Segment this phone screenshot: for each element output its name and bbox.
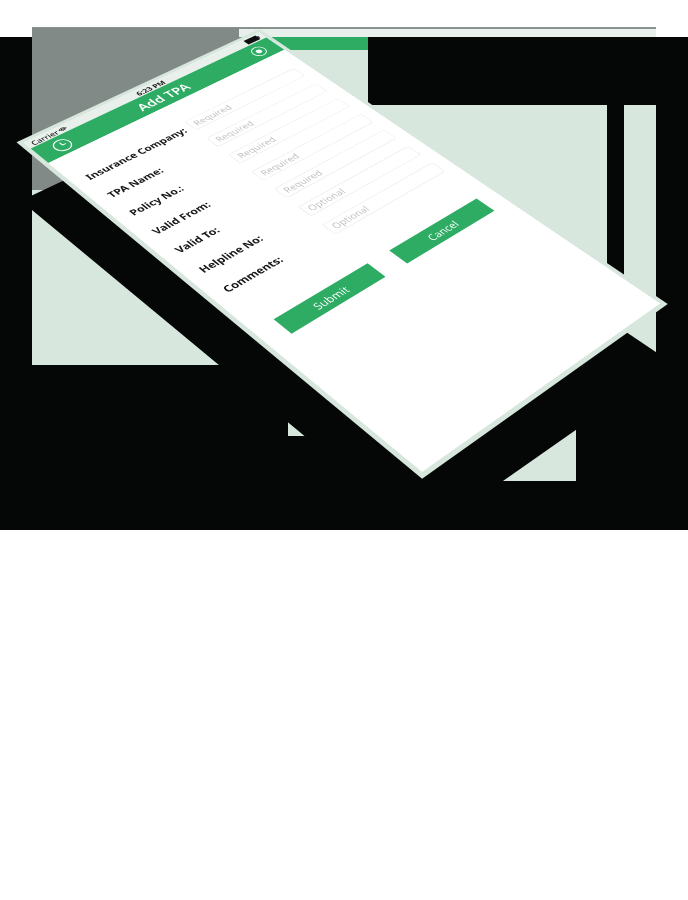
staticText: Add TPA	[132, 80, 195, 114]
staticText: Cancel	[423, 218, 463, 243]
staticText: Policy No.:	[125, 183, 187, 218]
staticText: Comments:	[219, 253, 287, 295]
staticText: Required	[212, 118, 257, 144]
button[interactable]: Cancel	[389, 198, 494, 264]
button[interactable]: Refresh	[247, 45, 271, 58]
staticText: Required	[280, 168, 326, 195]
staticText: 6:23 PM	[133, 78, 168, 97]
staticText: Submit	[309, 283, 353, 312]
button[interactable]: Required	[251, 114, 374, 181]
button[interactable]: Optional	[322, 162, 446, 235]
button[interactable]: Required	[274, 129, 397, 198]
staticText: Optional	[304, 186, 349, 213]
staticText: Required	[257, 151, 303, 178]
staticText: TPA Name:	[104, 165, 167, 200]
staticText: Optional	[328, 203, 373, 231]
staticText: Required	[190, 103, 235, 127]
staticText: Insurance Company:	[82, 125, 191, 182]
button[interactable]: Submit	[274, 263, 386, 334]
staticText: Required	[234, 134, 280, 160]
button[interactable]: History	[48, 136, 77, 154]
staticText: Helpline No:	[195, 233, 267, 275]
button[interactable]: Required	[184, 68, 306, 130]
button[interactable]: Required	[228, 98, 350, 164]
button[interactable]: Required	[206, 83, 328, 147]
button[interactable]: Optional	[298, 146, 421, 217]
staticText: Valid To:	[171, 224, 223, 255]
staticText: Valid From:	[148, 199, 214, 237]
staticText: Carrier	[28, 128, 61, 146]
